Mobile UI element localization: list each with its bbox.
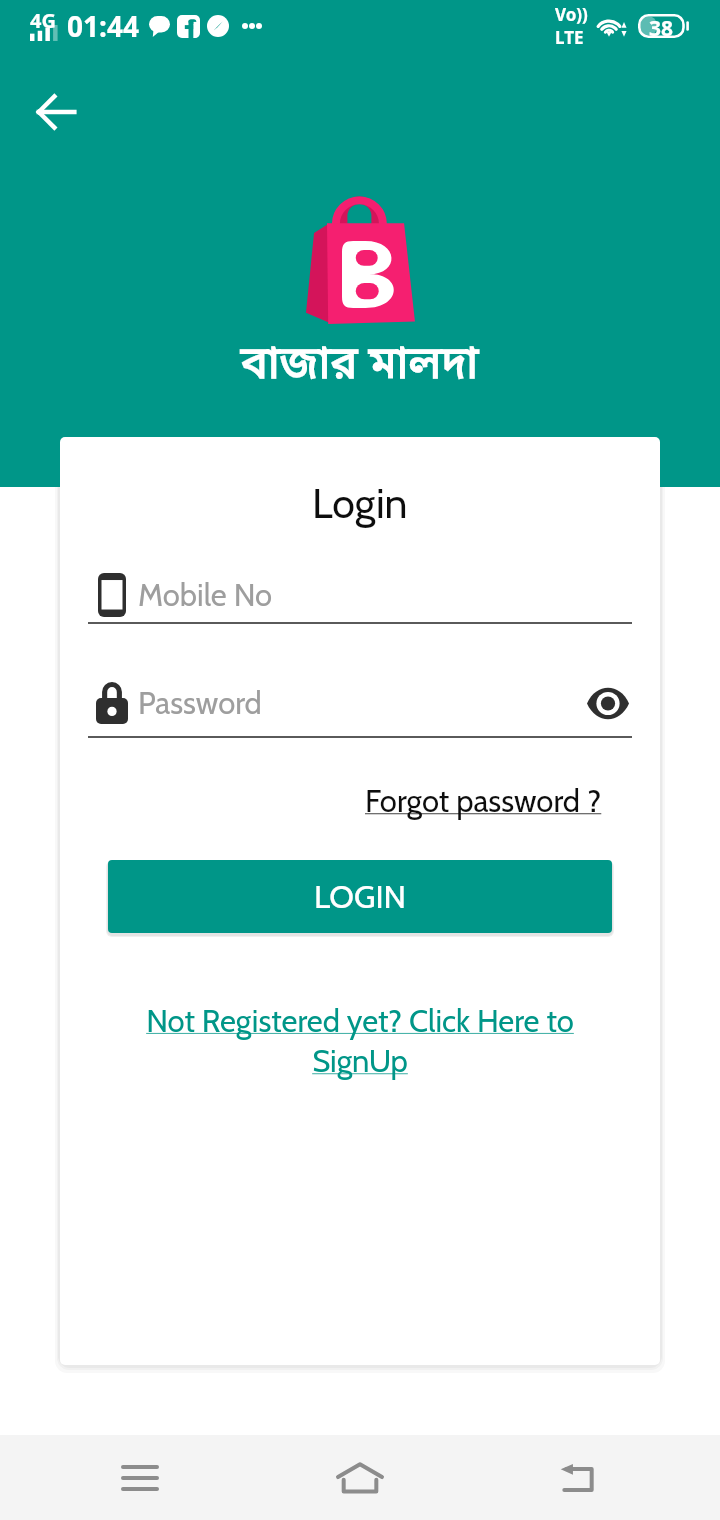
staticText: Not Registered yet? Click Here to SignUp (96, 1002, 624, 1080)
button[interactable]: Not Registered yet? Click Here to SignUp (96, 1002, 624, 1080)
button[interactable]: Recents (106, 1435, 174, 1520)
button[interactable]: Back (544, 1435, 612, 1520)
staticText: Password (138, 684, 262, 722)
staticText: Login (312, 478, 408, 528)
button[interactable]: Home (326, 1435, 394, 1520)
button[interactable]: Show password (584, 680, 632, 726)
staticText: Mobile No (138, 576, 273, 614)
staticText: 4G (30, 7, 56, 34)
staticText: বাজার মালদা (241, 337, 479, 397)
button[interactable]: LOGIN (108, 860, 612, 933)
staticText: 38 (649, 14, 674, 38)
staticText: 01:44 (67, 7, 139, 45)
staticText: Forgot password ? (365, 782, 602, 820)
button[interactable]: Forgot password ? (361, 778, 606, 824)
staticText: LOGIN (314, 877, 407, 916)
staticText: Vo)) (555, 3, 588, 26)
staticText: LTE (555, 26, 584, 49)
button[interactable]: Back (24, 80, 88, 144)
